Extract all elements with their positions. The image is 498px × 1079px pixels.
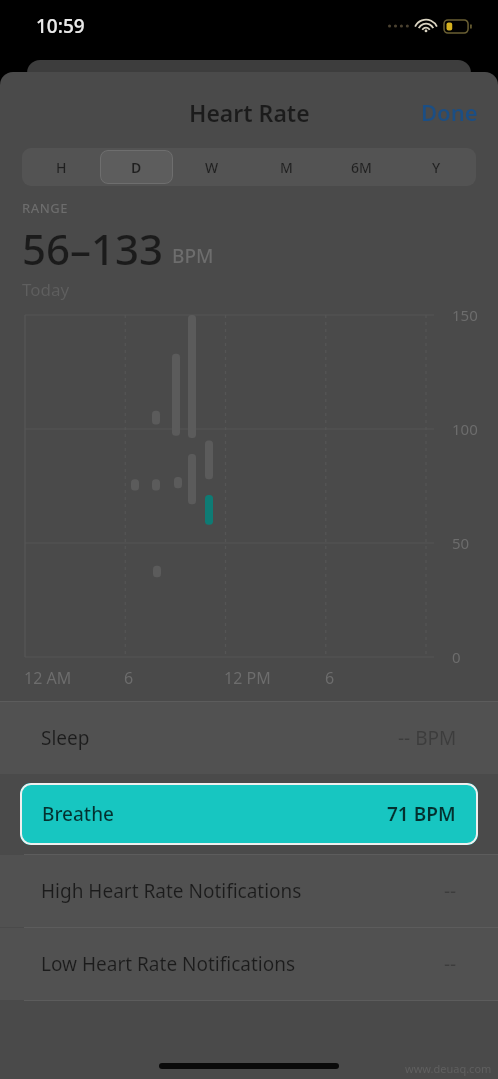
staticText: 0: [452, 647, 461, 667]
staticText: 6: [124, 667, 134, 689]
staticText: Heart Rate: [189, 97, 310, 128]
staticText: 56–133: [22, 220, 164, 277]
other: Cellular signal: [388, 20, 408, 32]
button[interactable]: Done: [401, 89, 498, 135]
button[interactable]: H: [25, 150, 98, 184]
staticText: H: [56, 158, 67, 177]
staticText: -- BPM: [398, 725, 457, 751]
other: Wi-Fi: [416, 19, 436, 33]
button[interactable]: High Heart Rate Notifications: [0, 855, 498, 927]
staticText: 150: [452, 305, 478, 325]
button[interactable]: Low Heart Rate Notifications: [0, 928, 498, 1000]
button[interactable]: M: [250, 150, 323, 184]
button[interactable]: 6M: [325, 150, 398, 184]
staticText: Done: [421, 97, 478, 127]
staticText: 12 PM: [224, 667, 271, 689]
staticText: 6: [325, 667, 335, 689]
staticText: 6M: [351, 158, 372, 177]
staticText: RANGE: [22, 199, 69, 217]
staticText: 12 AM: [24, 667, 72, 689]
staticText: Low Heart Rate Notifications: [41, 951, 296, 977]
staticText: Today: [22, 278, 70, 301]
staticText: 50: [452, 533, 470, 553]
staticText: 100: [452, 419, 478, 439]
staticText: BPM: [172, 243, 214, 269]
staticText: 71 BPM: [387, 801, 456, 827]
button[interactable]: Y: [400, 150, 473, 184]
button[interactable]: Breathe: [20, 783, 478, 845]
staticText: www.deuaq.com: [405, 1061, 492, 1076]
staticText: --: [444, 951, 457, 977]
staticText: M: [280, 158, 293, 177]
other: Battery low power mode: [444, 20, 472, 33]
button[interactable]: D: [100, 150, 173, 184]
staticText: Y: [432, 158, 441, 177]
staticText: --: [444, 878, 457, 904]
staticText: D: [131, 158, 142, 177]
button[interactable]: Sleep: [0, 702, 498, 774]
staticText: Breathe: [42, 801, 114, 827]
staticText: W: [205, 158, 219, 177]
staticText: High Heart Rate Notifications: [41, 878, 302, 904]
staticText: Sleep: [41, 725, 90, 751]
button[interactable]: W: [175, 150, 248, 184]
staticText: 10:59: [36, 13, 85, 39]
